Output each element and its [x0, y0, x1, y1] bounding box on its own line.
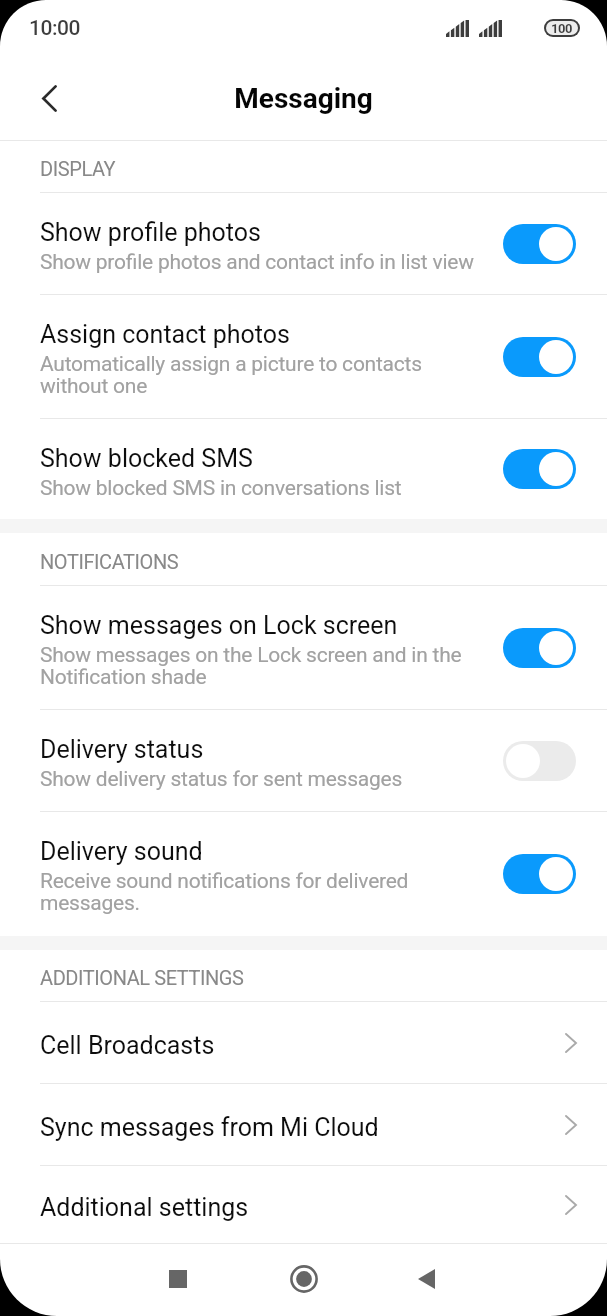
button[interactable]: Show blocked SMS	[0, 419, 607, 519]
staticText: Receive sound notifications for delivere…	[40, 869, 409, 894]
button[interactable]: On	[503, 337, 576, 377]
button[interactable]: Back	[394, 1246, 459, 1311]
button[interactable]: Show messages on Lock screen	[0, 586, 607, 709]
staticText: Additional settings	[40, 1193, 565, 1222]
button[interactable]: On	[503, 449, 576, 489]
staticText: DISPLAY	[40, 157, 116, 180]
button[interactable]: Assign contact photos	[0, 295, 607, 418]
staticText: 10:00	[29, 16, 81, 41]
staticText: Show blocked SMS	[40, 444, 253, 473]
button[interactable]: On	[503, 854, 576, 894]
staticText: Automatically assign a picture to contac…	[40, 352, 422, 377]
button[interactable]: Sync messages from Mi Cloud	[0, 1084, 607, 1165]
staticText: without one	[40, 374, 148, 399]
button[interactable]: Recent apps	[145, 1246, 210, 1311]
staticText: Show profile photos and contact info in …	[40, 250, 474, 275]
staticText: Delivery status	[40, 735, 204, 764]
button[interactable]: Home	[271, 1246, 336, 1311]
staticText: Show messages on Lock screen	[40, 611, 398, 640]
button[interactable]: On	[503, 628, 576, 668]
button[interactable]: On	[503, 224, 576, 264]
staticText: NOTIFICATIONS	[40, 550, 179, 573]
staticText: Show blocked SMS in conversations list	[40, 476, 402, 501]
staticText: messages.	[40, 891, 140, 916]
staticText: Delivery sound	[40, 837, 203, 866]
staticText: Show delivery status for sent messages	[40, 767, 402, 792]
staticText: 100	[551, 21, 573, 35]
staticText: Assign contact photos	[40, 320, 290, 349]
button[interactable]: Delivery sound	[0, 812, 607, 936]
button[interactable]: Cell Broadcasts	[0, 1002, 607, 1083]
staticText: Sync messages from Mi Cloud	[40, 1113, 565, 1142]
button[interactable]: Off	[503, 741, 576, 781]
button[interactable]: Additional settings	[0, 1166, 607, 1243]
staticText: Messaging	[234, 82, 373, 115]
button[interactable]: Back	[28, 77, 70, 119]
staticText: Show messages on the Lock screen and in …	[40, 643, 462, 668]
staticText: ADDITIONAL SETTINGS	[40, 966, 244, 989]
button[interactable]: Delivery status	[0, 710, 607, 811]
staticText: Show profile photos	[40, 218, 261, 247]
button[interactable]: Show profile photos	[0, 193, 607, 294]
staticText: Cell Broadcasts	[40, 1031, 565, 1060]
staticText: Notification shade	[40, 665, 207, 690]
